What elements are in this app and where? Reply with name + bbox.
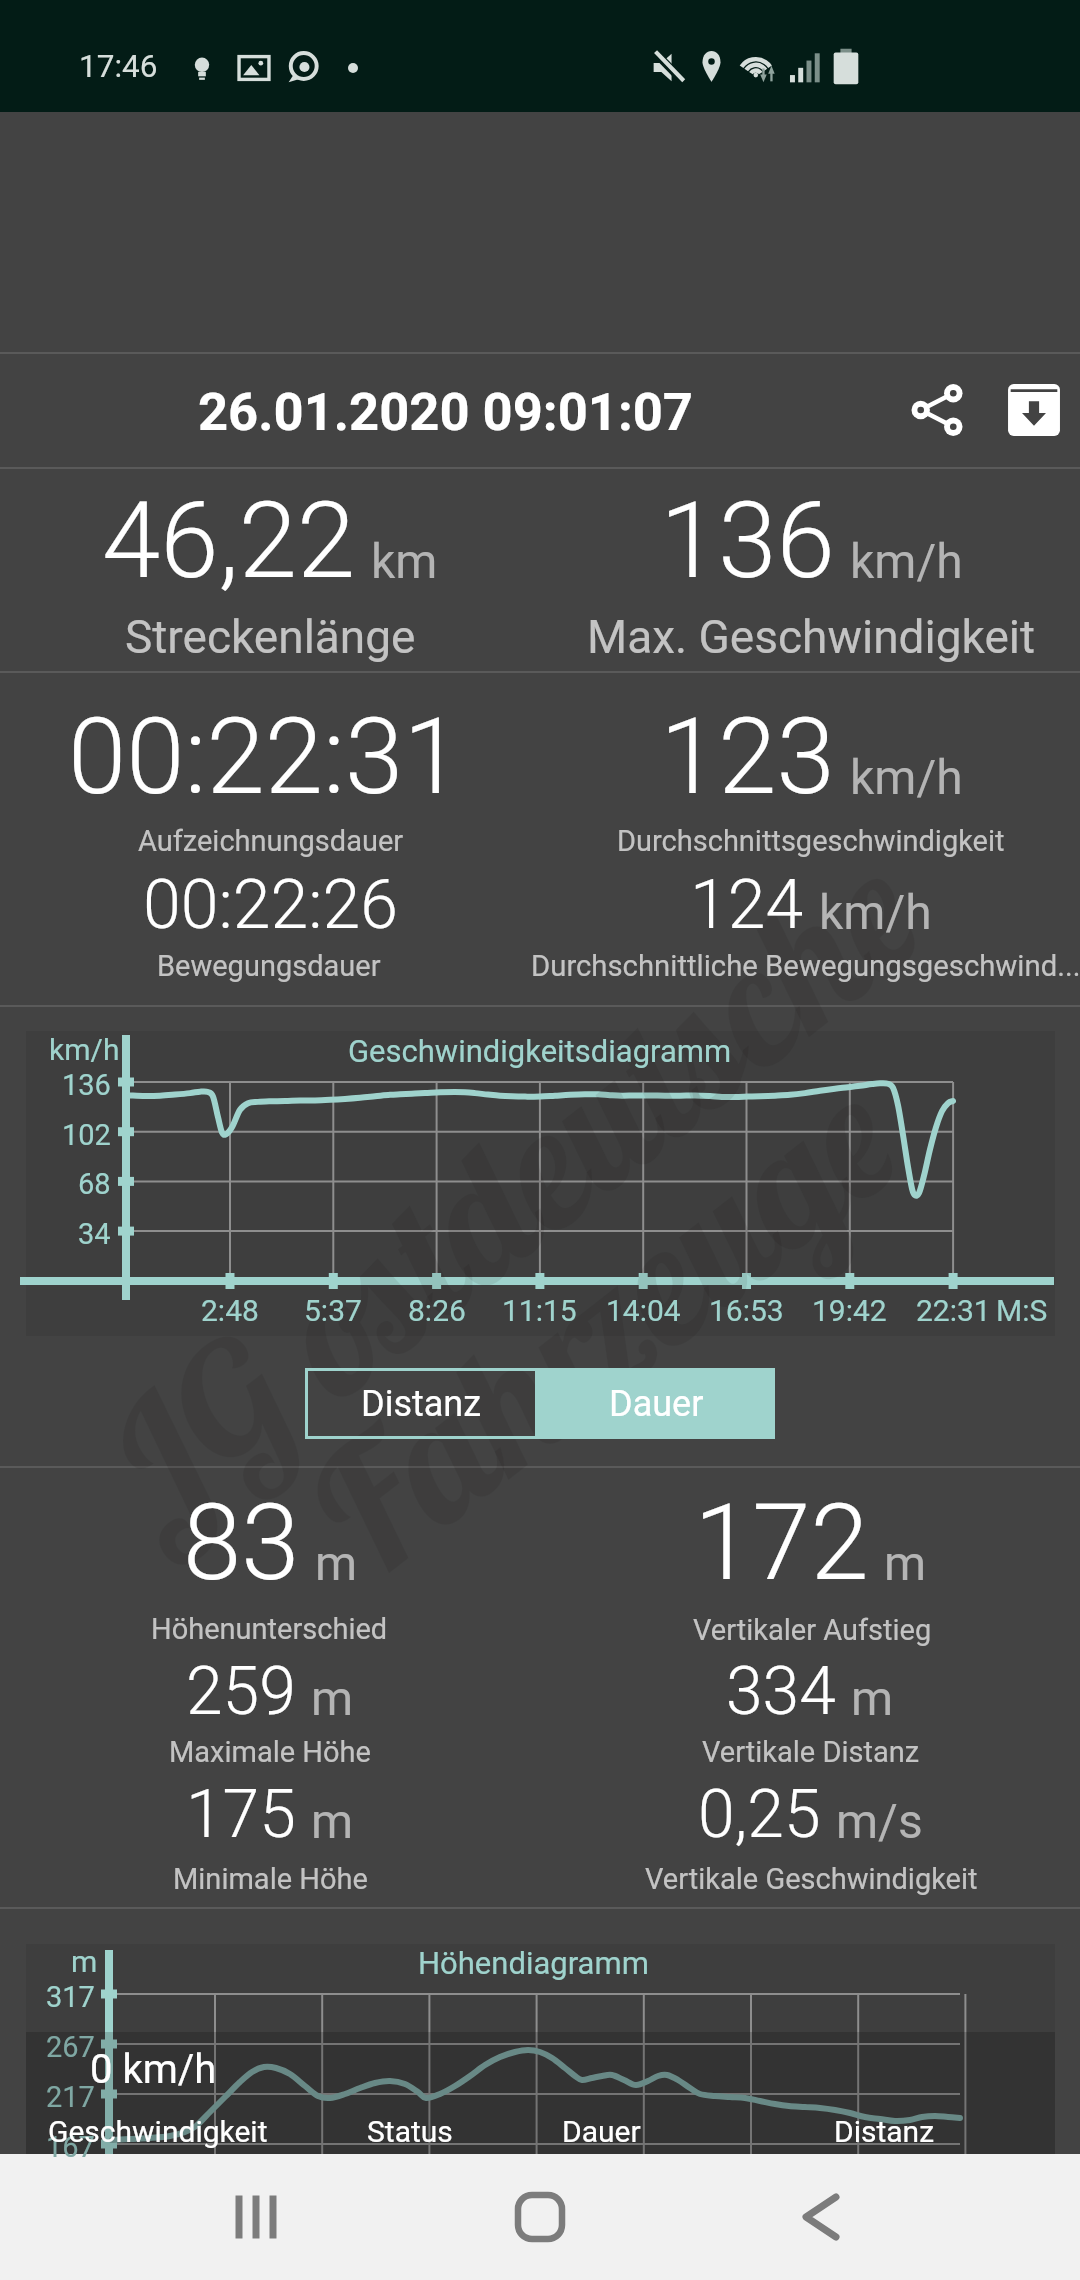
other: Battery	[832, 48, 860, 85]
other: Muted	[653, 51, 685, 84]
staticText: km/h	[850, 533, 963, 589]
staticText: 0,25	[698, 1776, 821, 1853]
other: Idea	[190, 52, 214, 84]
button[interactable]: Home	[360, 2154, 720, 2280]
staticText: 00:22:31	[68, 696, 462, 819]
staticText: Streckenlänge	[125, 610, 416, 664]
staticText: 22:31	[916, 1293, 991, 1328]
staticText: m	[71, 1944, 98, 1979]
staticText: m	[884, 1535, 927, 1591]
staticText: 167	[46, 2130, 95, 2164]
button[interactable]	[540, 2027, 810, 2154]
staticText: Minimale Höhe	[173, 1862, 368, 1896]
staticText: 217	[46, 2080, 95, 2114]
staticText: 68	[78, 1167, 111, 1201]
button[interactable]: Recent apps	[0, 2154, 360, 2280]
staticText: 19:42	[812, 1293, 887, 1328]
staticText: 172	[694, 1482, 869, 1605]
staticText: JG ostdeutsche	[62, 804, 961, 1572]
staticText: 16:53	[709, 1293, 784, 1328]
staticText: 83	[183, 1482, 300, 1605]
staticText: 8:26	[408, 1293, 466, 1328]
staticText: m	[311, 1670, 354, 1726]
staticText: Status	[367, 2114, 453, 2149]
staticText: Bewegungsdauer	[157, 949, 381, 983]
staticText: m	[851, 1670, 894, 1726]
staticText: Höhendiagramm	[418, 1945, 649, 1981]
other: Notification	[348, 63, 358, 73]
staticText: Vertikale Geschwindigkeit	[645, 1862, 978, 1896]
staticText: Dauer	[609, 1383, 704, 1425]
button[interactable]	[0, 2027, 270, 2154]
button[interactable]: Distanz	[305, 1368, 538, 1439]
staticText: km/h	[850, 749, 963, 805]
staticText: 00:22:26	[143, 865, 398, 945]
staticText: 34	[78, 1217, 111, 1251]
staticText: 334	[726, 1653, 836, 1730]
staticText: Durchschnittliche Bewegungsgeschwind...	[531, 949, 1080, 983]
staticText: M:S	[996, 1293, 1048, 1328]
other: Signal	[789, 50, 822, 83]
other: WhatsApp	[285, 51, 321, 85]
staticText: 136	[660, 480, 835, 603]
staticText: Vertikale Distanz	[702, 1735, 920, 1769]
staticText: 2:48	[201, 1293, 259, 1328]
other: Photos	[237, 53, 271, 83]
staticText: km/h	[819, 884, 932, 940]
staticText: 14:04	[606, 1293, 681, 1328]
staticText: Höhenunterschied	[151, 1612, 388, 1646]
staticText: Fahrzeuge	[264, 1029, 938, 1622]
staticText: Vertikaler Aufstieg	[693, 1613, 932, 1647]
other: Wi-Fi	[739, 50, 781, 83]
staticText: Maximale Höhe	[169, 1735, 371, 1769]
button[interactable]	[270, 2027, 540, 2154]
staticText: Distanz	[834, 2114, 935, 2149]
staticText: 317	[46, 1980, 95, 2014]
staticText: km/h	[49, 1032, 120, 1067]
button[interactable]: Dauer	[538, 1368, 775, 1439]
staticText: Distanz	[361, 1383, 482, 1425]
staticText: Max. Geschwindigkeit	[587, 610, 1036, 664]
other: Location	[699, 49, 724, 84]
staticText: 0 km/h	[90, 2046, 217, 2093]
staticText: m	[315, 1535, 358, 1591]
staticText: 123	[660, 696, 835, 819]
button[interactable]	[810, 2027, 1080, 2154]
staticText: 124	[690, 865, 804, 945]
button[interactable]: Share	[893, 366, 981, 454]
staticText: m	[311, 1793, 354, 1849]
staticText: Aufzeichnungsdauer	[138, 824, 404, 858]
staticText: Geschwindigkeitsdiagramm	[348, 1033, 732, 1069]
staticText: 175	[186, 1776, 296, 1853]
staticText: 267	[46, 2030, 95, 2064]
staticText: 26.01.2020 09:01:07	[198, 381, 693, 443]
staticText: Durchschnittsgeschwindigkeit	[617, 824, 1005, 858]
staticText: 259	[186, 1653, 296, 1730]
staticText: 5:37	[304, 1293, 362, 1328]
staticText: 102	[62, 1118, 111, 1152]
staticText: km	[371, 533, 438, 589]
button[interactable]: Save	[990, 366, 1078, 454]
button[interactable]: Back	[720, 2154, 1080, 2280]
staticText: Dauer	[562, 2114, 641, 2149]
staticText: Geschwindigkeit	[48, 2114, 268, 2149]
staticText: 11:15	[502, 1293, 577, 1328]
staticText: 17:46	[79, 48, 158, 85]
staticText: m/s	[836, 1793, 923, 1849]
staticText: 46,22	[102, 480, 356, 603]
staticText: 136	[62, 1068, 111, 1102]
